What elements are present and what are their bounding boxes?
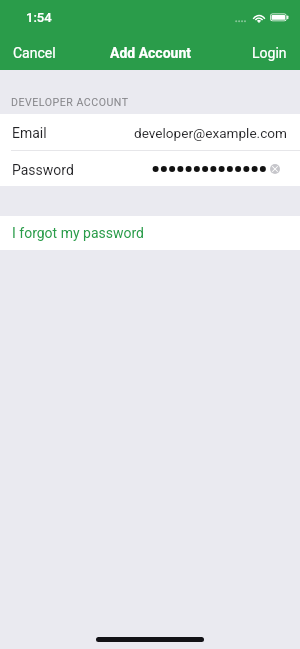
staticText: Login — [252, 45, 287, 61]
staticText: I forgot my password — [12, 225, 144, 241]
staticText: Add Account — [110, 45, 191, 61]
staticText: 1:54 — [26, 10, 52, 25]
button[interactable]: Cancel — [0, 30, 69, 70]
button[interactable]: I forgot my password — [0, 216, 300, 250]
staticText: Cancel — [13, 45, 56, 61]
button[interactable]: Email — [0, 114, 300, 150]
staticText: developer@example.com — [134, 125, 287, 141]
staticText: Password — [12, 162, 74, 178]
button[interactable]: Password — [0, 151, 300, 186]
button[interactable]: Clear password — [270, 164, 280, 174]
button[interactable]: Login — [239, 30, 300, 70]
staticText: Email — [12, 125, 47, 141]
staticText: DEVELOPER ACCOUNT — [11, 96, 129, 108]
